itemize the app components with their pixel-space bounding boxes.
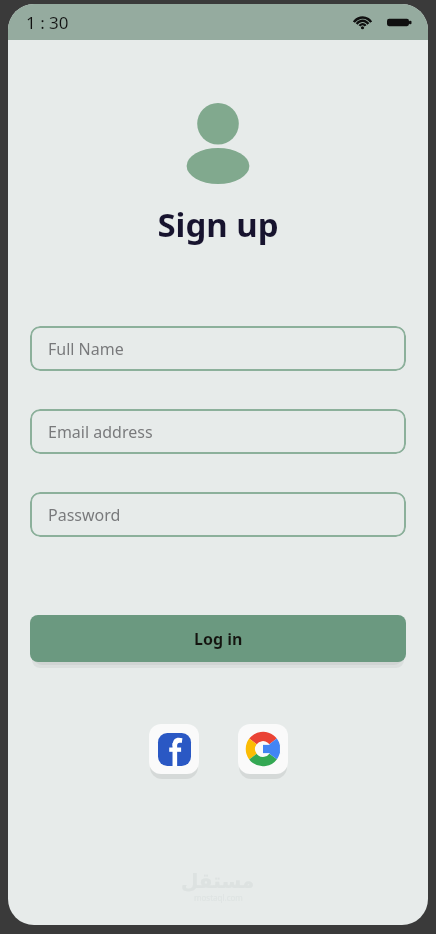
staticText: 1 : 30 — [26, 11, 69, 34]
staticText: Email address — [48, 421, 153, 443]
staticText: مستقل — [181, 869, 255, 892]
staticText: Full Name — [48, 338, 124, 360]
button[interactable]: Sign up with Google — [238, 724, 288, 774]
staticText: Log in — [194, 628, 243, 650]
button[interactable]: Password — [30, 492, 406, 537]
button[interactable]: Email address — [30, 409, 406, 454]
staticText: Password — [48, 504, 121, 526]
button[interactable]: Log in — [30, 615, 406, 662]
button[interactable]: Sign up with Facebook — [149, 724, 199, 774]
staticText: Sign up — [8, 202, 428, 247]
button[interactable]: Full Name — [30, 326, 406, 371]
